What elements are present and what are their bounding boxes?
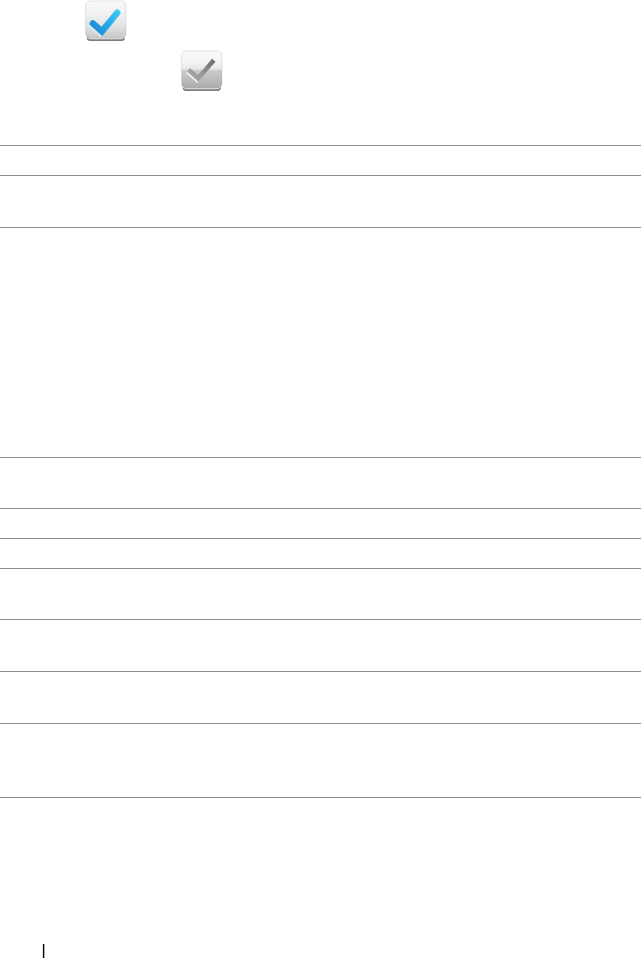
button[interactable]: Checked checkbox [85,0,126,42]
button[interactable]: Disabled checkbox [181,50,222,92]
button[interactable]: Text input [42,944,45,958]
